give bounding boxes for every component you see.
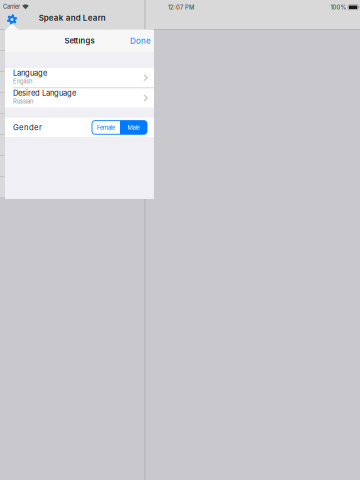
staticText: Russian bbox=[13, 98, 33, 105]
staticText: Settings bbox=[64, 36, 94, 45]
staticText: Female bbox=[97, 124, 115, 131]
button[interactable]: Done bbox=[130, 31, 154, 51]
button[interactable]: Language bbox=[5, 68, 154, 87]
staticText: Speak and Learn bbox=[39, 13, 106, 23]
staticText: Carrier bbox=[3, 3, 20, 10]
staticText: English bbox=[13, 78, 32, 85]
staticText: Desired Language bbox=[13, 88, 76, 98]
button[interactable]: Settings bbox=[1, 8, 23, 30]
button[interactable]: Desired Language bbox=[5, 88, 154, 108]
staticText: Done bbox=[130, 36, 151, 46]
staticText: 100% bbox=[330, 4, 346, 11]
button[interactable]: Female bbox=[92, 121, 120, 134]
staticText: 12:07 PM bbox=[168, 4, 194, 11]
staticText: Language bbox=[13, 68, 47, 77]
staticText: Male bbox=[127, 124, 139, 131]
staticText: Gender bbox=[13, 123, 42, 132]
button[interactable]: Male bbox=[120, 121, 147, 134]
